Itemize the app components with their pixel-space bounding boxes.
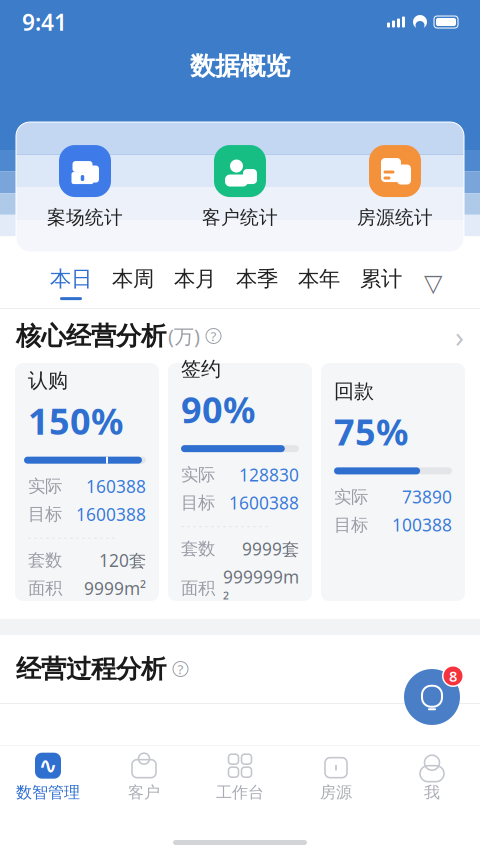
- staticText: 房源统计: [357, 206, 433, 229]
- staticText: 目标: [334, 514, 368, 536]
- staticText: ?: [210, 327, 216, 345]
- button[interactable]: ∿: [0, 751, 96, 803]
- staticText: 经营过程分析: [16, 653, 166, 684]
- button[interactable]: 客户统计: [185, 145, 295, 229]
- staticText: 120套: [99, 549, 146, 572]
- staticText: 客户: [128, 783, 160, 802]
- staticText: 1600388: [229, 491, 299, 514]
- button[interactable]: 本月: [164, 258, 226, 308]
- staticText: 8: [449, 666, 457, 686]
- button[interactable]: 通知: [400, 665, 464, 729]
- staticText: 999999m²: [223, 565, 299, 611]
- staticText: 核心经营分析: [16, 320, 166, 351]
- staticText: ›: [455, 316, 464, 355]
- staticText: 100388: [392, 513, 452, 536]
- staticText: 9999套: [242, 537, 299, 560]
- staticText: 套数: [28, 549, 62, 571]
- button[interactable]: 筛选: [412, 258, 454, 308]
- staticText: 本周: [112, 266, 154, 292]
- staticText: 128830: [239, 463, 299, 486]
- button[interactable]: 累计: [350, 258, 412, 308]
- button[interactable]: 本周: [102, 258, 164, 308]
- button[interactable]: 本年: [288, 258, 350, 308]
- staticText: (万): [168, 323, 200, 349]
- staticText: 回款: [334, 379, 374, 404]
- staticText: 1600388: [76, 503, 146, 526]
- button[interactable]: 房源统计: [340, 145, 450, 229]
- staticText: 目标: [28, 503, 62, 525]
- staticText: 累计: [360, 266, 402, 292]
- staticText: 9999m²: [84, 577, 146, 600]
- staticText: 目标: [181, 492, 215, 513]
- staticText: 9:41: [22, 7, 67, 37]
- staticText: 160388: [86, 475, 146, 498]
- staticText: 数智管理: [16, 783, 80, 802]
- staticText: 实际: [334, 486, 368, 507]
- staticText: 客户统计: [202, 206, 278, 229]
- button[interactable]: 核心经营分析: [0, 309, 480, 363]
- staticText: ?: [177, 660, 183, 678]
- button[interactable]: 房源: [288, 751, 384, 803]
- staticText: 套数: [181, 538, 215, 559]
- staticText: 签约: [181, 357, 221, 381]
- staticText: 我: [424, 783, 440, 802]
- staticText: 75%: [334, 408, 408, 455]
- button[interactable]: 案场统计: [30, 145, 140, 229]
- staticText: 本季: [236, 266, 278, 292]
- staticText: 150%: [28, 397, 123, 445]
- staticText: ▽: [424, 269, 442, 297]
- staticText: 本日: [50, 266, 92, 292]
- staticText: 实际: [28, 475, 62, 497]
- staticText: 实际: [181, 464, 215, 485]
- button[interactable]: 工作台: [192, 751, 288, 803]
- staticText: 面积: [181, 578, 215, 599]
- staticText: 本年: [298, 266, 340, 292]
- button[interactable]: 本季: [226, 258, 288, 308]
- staticText: 工作台: [216, 783, 264, 802]
- staticText: 本月: [174, 266, 216, 292]
- button[interactable]: 签约: [168, 363, 312, 601]
- staticText: 73890: [402, 485, 452, 508]
- staticText: 90%: [181, 385, 255, 433]
- button[interactable]: 本日: [40, 258, 102, 308]
- staticText: 案场统计: [47, 206, 123, 229]
- button[interactable]: 回款: [321, 363, 465, 601]
- staticText: 房源: [320, 783, 352, 802]
- staticText: 面积: [28, 578, 62, 599]
- staticText: 认购: [28, 368, 68, 393]
- staticText: ∿: [38, 753, 57, 778]
- staticText: 数据概览: [190, 50, 290, 81]
- button[interactable]: 我: [384, 751, 480, 803]
- button[interactable]: 客户: [96, 751, 192, 803]
- button[interactable]: 认购: [15, 363, 159, 601]
